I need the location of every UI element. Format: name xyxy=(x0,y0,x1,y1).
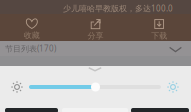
staticText: 节目列表(170) xyxy=(5,43,56,54)
button[interactable]: 收藏 xyxy=(0,14,64,41)
staticText: 分享 xyxy=(87,31,103,41)
staticText: 下载 xyxy=(151,31,167,41)
button[interactable]: 分享 xyxy=(64,14,127,41)
button[interactable]: 节目列表(170) xyxy=(0,41,191,56)
staticText: 收藏 xyxy=(24,30,40,40)
button[interactable]: 下载 xyxy=(127,14,191,41)
staticText: 少儿嘻哈早教版权，多达100.0 xyxy=(63,3,173,14)
